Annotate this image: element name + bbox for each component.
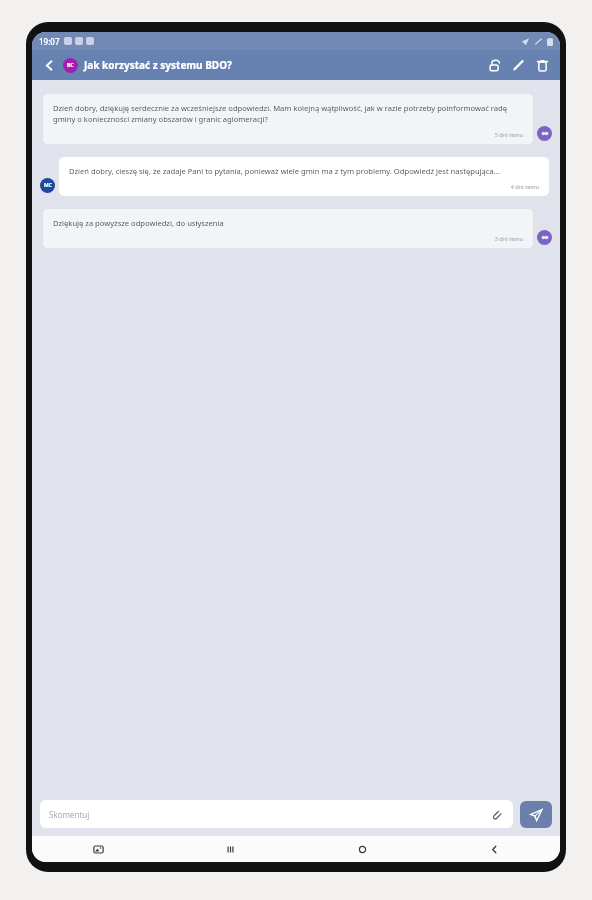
- button[interactable]: Dziękuję za powyższe odpowiedzi, do usły…: [43, 209, 533, 248]
- button[interactable]: Send: [520, 801, 552, 828]
- staticText: Dzień dobry, dziękuję serdecznie za wcze…: [53, 103, 523, 124]
- button[interactable]: Unlock: [482, 53, 506, 77]
- staticText: Dzień dobry, cieszę się, że zadaje Pani …: [69, 166, 500, 176]
- button[interactable]: Dzień dobry, dziękuję serdecznie za wcze…: [43, 94, 533, 144]
- staticText: Jak korzystać z systemu BDO?: [84, 58, 232, 72]
- button[interactable]: Home: [296, 836, 428, 862]
- staticText: MC: [44, 182, 52, 189]
- button[interactable]: Attach file: [488, 806, 504, 822]
- staticText: Skomentuj: [49, 809, 90, 820]
- button[interactable]: Edit: [506, 53, 530, 77]
- button[interactable]: Skomentuj: [40, 800, 513, 828]
- staticText: 5 dni temu: [53, 131, 523, 139]
- button[interactable]: Back: [38, 54, 60, 76]
- button[interactable]: Dzień dobry, cieszę się, że zadaje Pani …: [59, 157, 549, 196]
- button[interactable]: Back: [428, 836, 560, 862]
- staticText: 3 dni temu: [53, 235, 523, 243]
- staticText: BC: [67, 62, 74, 69]
- staticText: 19:07: [39, 36, 60, 47]
- staticText: 4 dni temu: [69, 183, 539, 191]
- button[interactable]: Recent apps: [164, 836, 296, 862]
- button[interactable]: Delete: [530, 53, 554, 77]
- button[interactable]: Screenshot: [32, 836, 164, 862]
- staticText: Dziękuję za powyższe odpowiedzi, do usły…: [53, 218, 224, 228]
